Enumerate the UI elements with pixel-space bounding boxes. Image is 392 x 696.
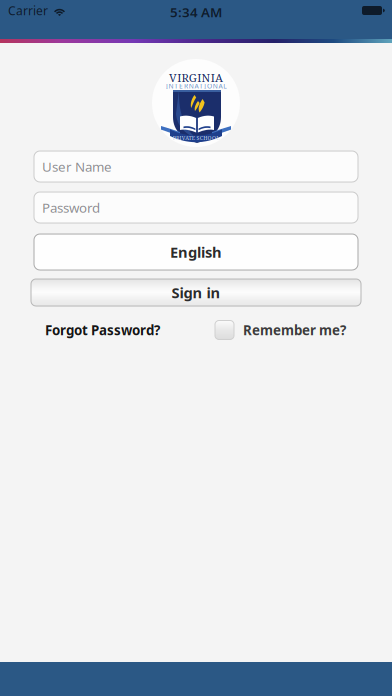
button[interactable]: Remember me? [215,319,361,341]
staticText: User Name [42,158,112,175]
staticText: English [170,242,222,262]
button[interactable]: Sign in [31,279,361,306]
staticText: Forgot Password? [45,321,160,339]
button[interactable]: English [34,234,358,270]
staticText: Carrier [8,2,48,18]
staticText: Password [42,199,100,216]
staticText: PRIVATE SCHOOL [173,134,219,142]
staticText: VIRGINIA [169,70,223,85]
staticText: Remember me? [243,321,346,339]
staticText: INTERNATIONAL [166,82,226,90]
staticText: 5:34 AM [170,3,222,21]
button[interactable]: Forgot Password? [45,319,163,341]
staticText: Sign in [171,283,220,302]
